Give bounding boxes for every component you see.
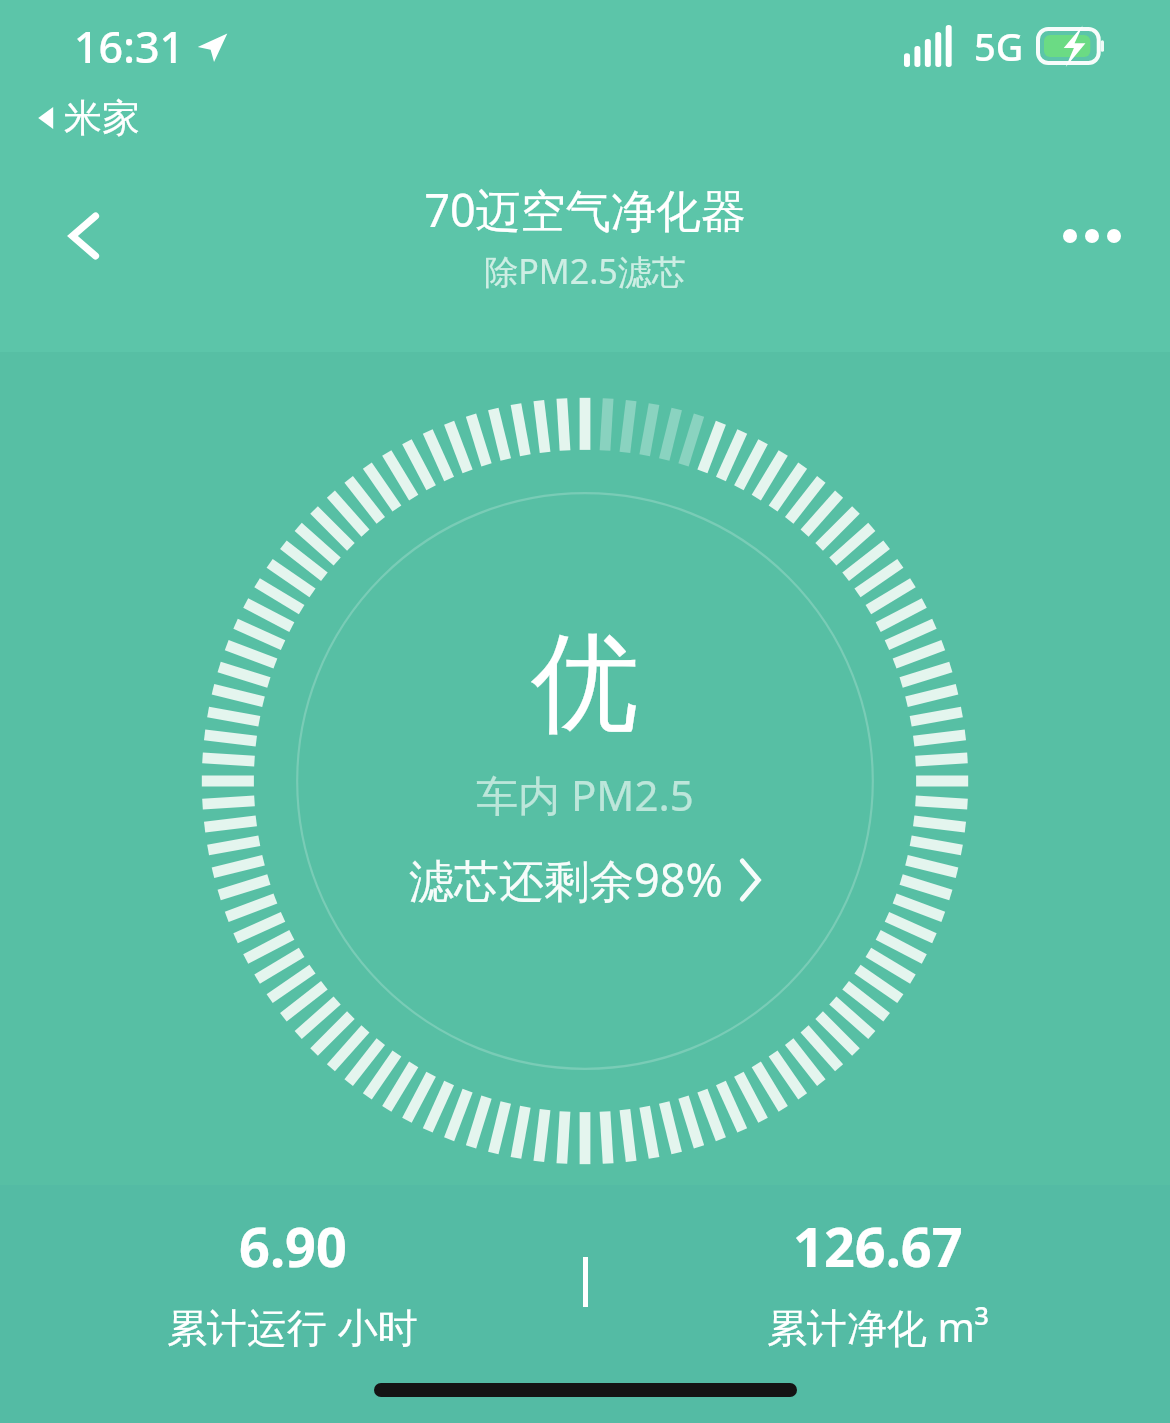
- button[interactable]: 6.90: [0, 1205, 585, 1358]
- staticText: 累计净化 m³: [767, 1299, 989, 1354]
- button[interactable]: 米家: [32, 92, 144, 144]
- staticText: 米家: [64, 94, 140, 142]
- button[interactable]: 滤芯还剩余98%: [401, 845, 769, 914]
- staticText: 优: [531, 616, 639, 752]
- staticText: 126.67: [793, 1209, 963, 1283]
- button[interactable]: 126.67: [585, 1205, 1170, 1358]
- staticText: 70迈空气净化器: [424, 179, 746, 240]
- button[interactable]: More options: [1048, 192, 1136, 280]
- staticText: 5G: [974, 20, 1024, 72]
- staticText: 16:31: [74, 17, 185, 76]
- staticText: 累计运行 小时: [167, 1299, 418, 1354]
- staticText: 6.90: [239, 1209, 347, 1283]
- staticText: 除PM2.5滤芯: [484, 248, 686, 294]
- staticText: 车内 PM2.5: [476, 766, 694, 823]
- button[interactable]: Back: [42, 192, 130, 280]
- staticText: 滤芯还剩余98%: [409, 849, 723, 910]
